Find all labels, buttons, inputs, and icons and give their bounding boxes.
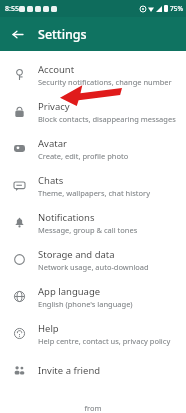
staticText: from xyxy=(84,403,102,413)
staticText: Invite a friend xyxy=(38,364,101,377)
staticText: App language xyxy=(38,285,101,298)
staticText: Storage and data xyxy=(38,248,115,261)
staticText: 75% xyxy=(170,4,183,13)
staticText: Chats xyxy=(38,174,64,187)
staticText: Block contacts, disappearing messages xyxy=(38,114,176,124)
button[interactable]: Chats xyxy=(0,167,186,204)
button[interactable]: Privacy xyxy=(0,93,186,130)
staticText: Network usage, auto-download xyxy=(38,262,149,272)
staticText: Help centre, contact us, privacy policy xyxy=(38,336,171,346)
staticText: Help xyxy=(38,322,59,335)
button[interactable]: App language xyxy=(0,278,186,315)
staticText: Privacy xyxy=(38,100,70,113)
staticText: Account xyxy=(38,63,75,76)
staticText: Theme, wallpapers, chat history xyxy=(38,188,150,198)
staticText: Create, edit, profile photo xyxy=(38,151,129,161)
button[interactable]: Account xyxy=(0,56,186,93)
staticText: Security notifications, change number xyxy=(38,77,172,87)
button[interactable]: Help xyxy=(0,315,186,352)
staticText: Message, group & call tones xyxy=(38,225,138,235)
staticText: 8:55 xyxy=(5,4,19,14)
staticText: English (phone's language) xyxy=(38,299,133,309)
staticText: Settings xyxy=(38,26,87,43)
staticText: Notifications xyxy=(38,211,95,224)
button[interactable]: Back xyxy=(6,23,28,45)
staticText: Avatar xyxy=(38,137,67,150)
button[interactable]: Notifications xyxy=(0,204,186,241)
button[interactable]: Invite a friend xyxy=(0,352,186,389)
button[interactable]: Avatar xyxy=(0,130,186,167)
button[interactable]: Storage and data xyxy=(0,241,186,278)
